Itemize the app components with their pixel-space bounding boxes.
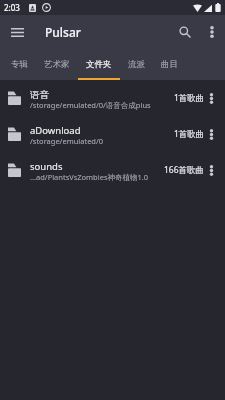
staticText: 语音 [30,89,49,101]
staticText: aDownload [30,124,81,137]
button[interactable]: 文件夹 [78,49,120,80]
staticText: Pulsar [45,24,81,40]
staticText: sounds [30,160,63,173]
staticText: 艺术家 [44,59,70,70]
staticText: 1首歌曲 [174,128,205,140]
staticText: 曲目 [161,59,178,70]
button[interactable]: Search [171,15,198,49]
staticText: 166首歌曲 [164,164,205,176]
staticText: /storage/emulated/0/语音合成plus [30,100,151,110]
staticText: 1首歌曲 [174,92,205,104]
button[interactable]: 曲目 [153,49,186,80]
button[interactable]: 专辑 [3,49,36,80]
button[interactable]: 流派 [120,49,153,80]
button[interactable]: 语音 [0,80,225,116]
staticText: 专辑 [11,59,28,70]
button[interactable]: aDownload [0,116,225,152]
staticText: 文件夹 [86,59,112,70]
button[interactable]: More options [202,80,221,116]
button[interactable]: More options [202,116,221,152]
staticText: 流派 [128,59,145,70]
button[interactable]: 艺术家 [36,49,78,80]
button[interactable]: sounds [0,152,225,188]
staticText: 2:03 [4,2,20,13]
staticText: /storage/emulated/0 [30,136,104,146]
button[interactable]: More options [202,152,221,188]
button[interactable]: Open navigation drawer [0,15,34,49]
staticText: ...ad/PlantsVsZombies神奇植物1.0 [30,172,149,182]
button[interactable]: More options [198,15,225,49]
